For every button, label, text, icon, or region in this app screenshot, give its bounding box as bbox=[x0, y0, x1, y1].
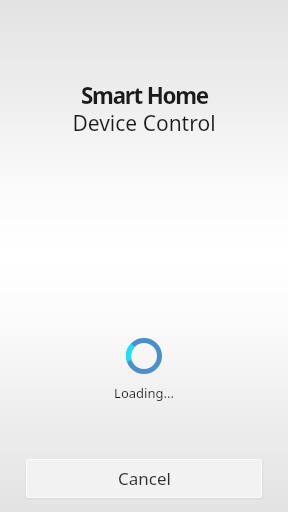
staticText: Loading... bbox=[114, 384, 174, 402]
other: Loading progress bbox=[126, 338, 162, 374]
button[interactable]: Cancel bbox=[26, 459, 262, 498]
staticText: Device Control bbox=[72, 109, 216, 138]
staticText: Smart Home bbox=[81, 80, 208, 111]
staticText: Cancel bbox=[118, 467, 171, 490]
